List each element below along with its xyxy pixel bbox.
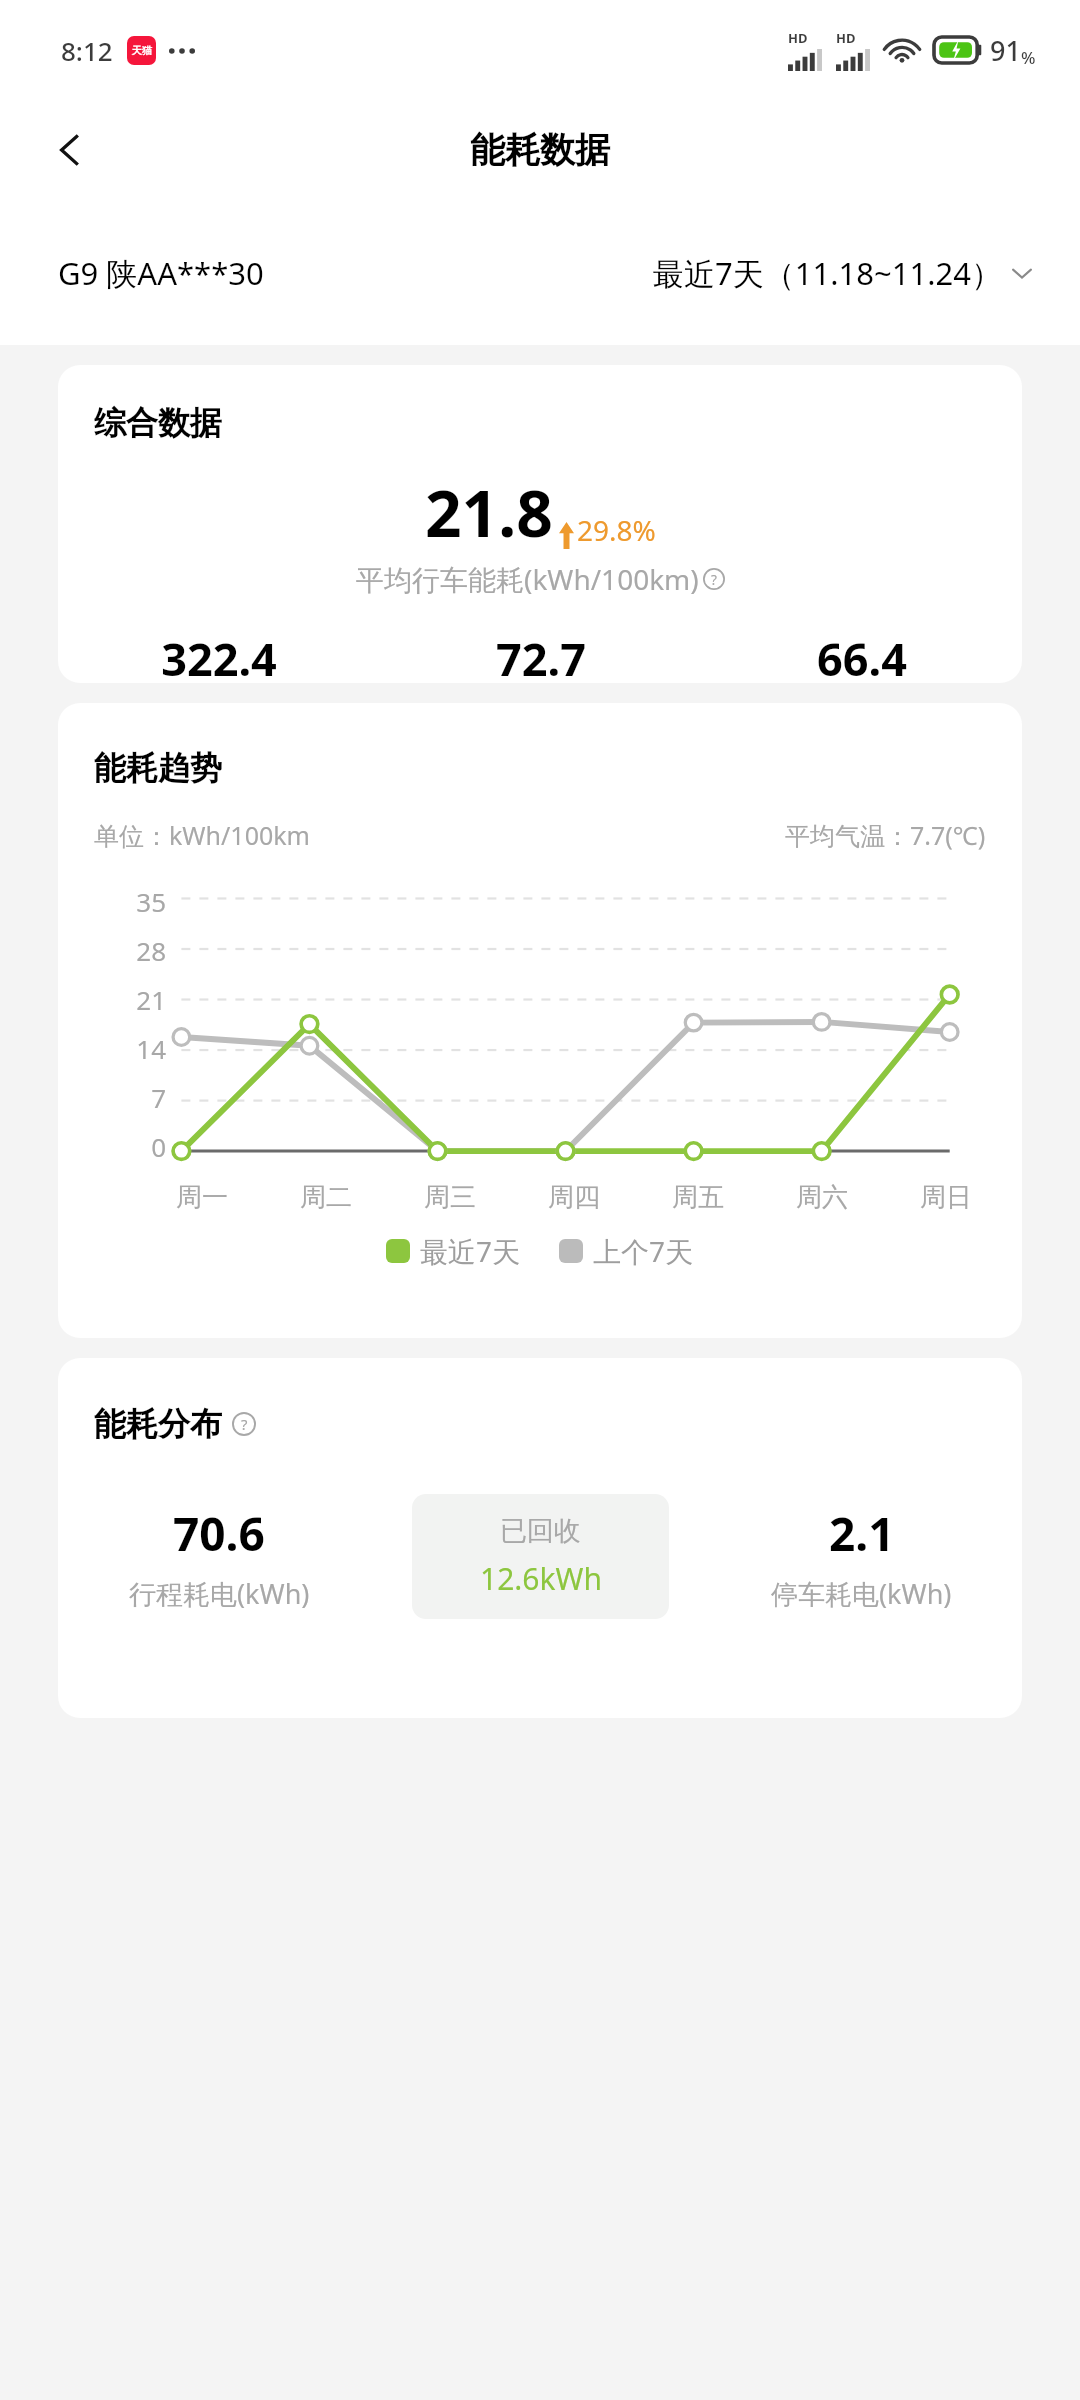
- staticText: 14: [136, 1031, 166, 1066]
- staticText: 最近7天（11.18~11.24）: [653, 252, 1002, 294]
- staticText: 35: [136, 884, 166, 919]
- staticText: 天猫: [132, 44, 152, 57]
- staticText: 综合数据: [94, 403, 222, 443]
- staticText: 周六: [760, 1181, 884, 1214]
- staticText: 能耗趋势: [94, 748, 222, 788]
- staticText: 21: [136, 982, 166, 1017]
- staticText: 29.8%: [577, 511, 656, 549]
- staticText: 70.6: [173, 1502, 265, 1565]
- staticText: 21.8: [425, 469, 553, 556]
- staticText: 单位：kWh/100km: [94, 818, 310, 852]
- staticText: G9 陕AA***30: [58, 252, 264, 294]
- staticText: 周一: [140, 1181, 264, 1214]
- staticText: 周日: [884, 1181, 1008, 1214]
- staticText: ?: [711, 570, 717, 589]
- staticText: 12.6kWh: [480, 1558, 602, 1599]
- staticText: 上个7天: [593, 1232, 694, 1270]
- staticText: 28: [136, 933, 166, 968]
- staticText: 91: [990, 32, 1021, 69]
- staticText: HD: [788, 29, 808, 47]
- staticText: 平均气温：7.7(℃): [785, 818, 986, 852]
- staticText: 周二: [264, 1181, 388, 1214]
- staticText: 0: [151, 1129, 166, 1164]
- staticText: 8:12: [61, 33, 113, 68]
- staticText: 已回收: [500, 1514, 581, 1548]
- button[interactable]: 最近7天（11.18~11.24）: [653, 252, 1036, 294]
- staticText: HD: [836, 29, 856, 47]
- staticText: ?: [241, 1414, 248, 1434]
- staticText: 周四: [512, 1181, 636, 1214]
- staticText: 72.7: [496, 628, 586, 683]
- staticText: 能耗数据: [470, 128, 610, 172]
- staticText: 322.4: [161, 628, 277, 683]
- staticText: 平均行车能耗(kWh/100km): [356, 560, 699, 598]
- staticText: 周五: [636, 1181, 760, 1214]
- staticText: 66.4: [817, 628, 907, 683]
- staticText: 能耗分布: [94, 1404, 222, 1444]
- staticText: 最近7天: [420, 1232, 521, 1270]
- staticText: 2.1: [829, 1502, 895, 1565]
- staticText: 停车耗电(kWh): [771, 1575, 952, 1612]
- button[interactable]: Back: [34, 114, 106, 186]
- staticText: %: [1021, 46, 1036, 69]
- staticText: 7: [151, 1080, 166, 1115]
- staticText: 周三: [388, 1181, 512, 1214]
- staticText: 行程耗电(kWh): [129, 1575, 310, 1612]
